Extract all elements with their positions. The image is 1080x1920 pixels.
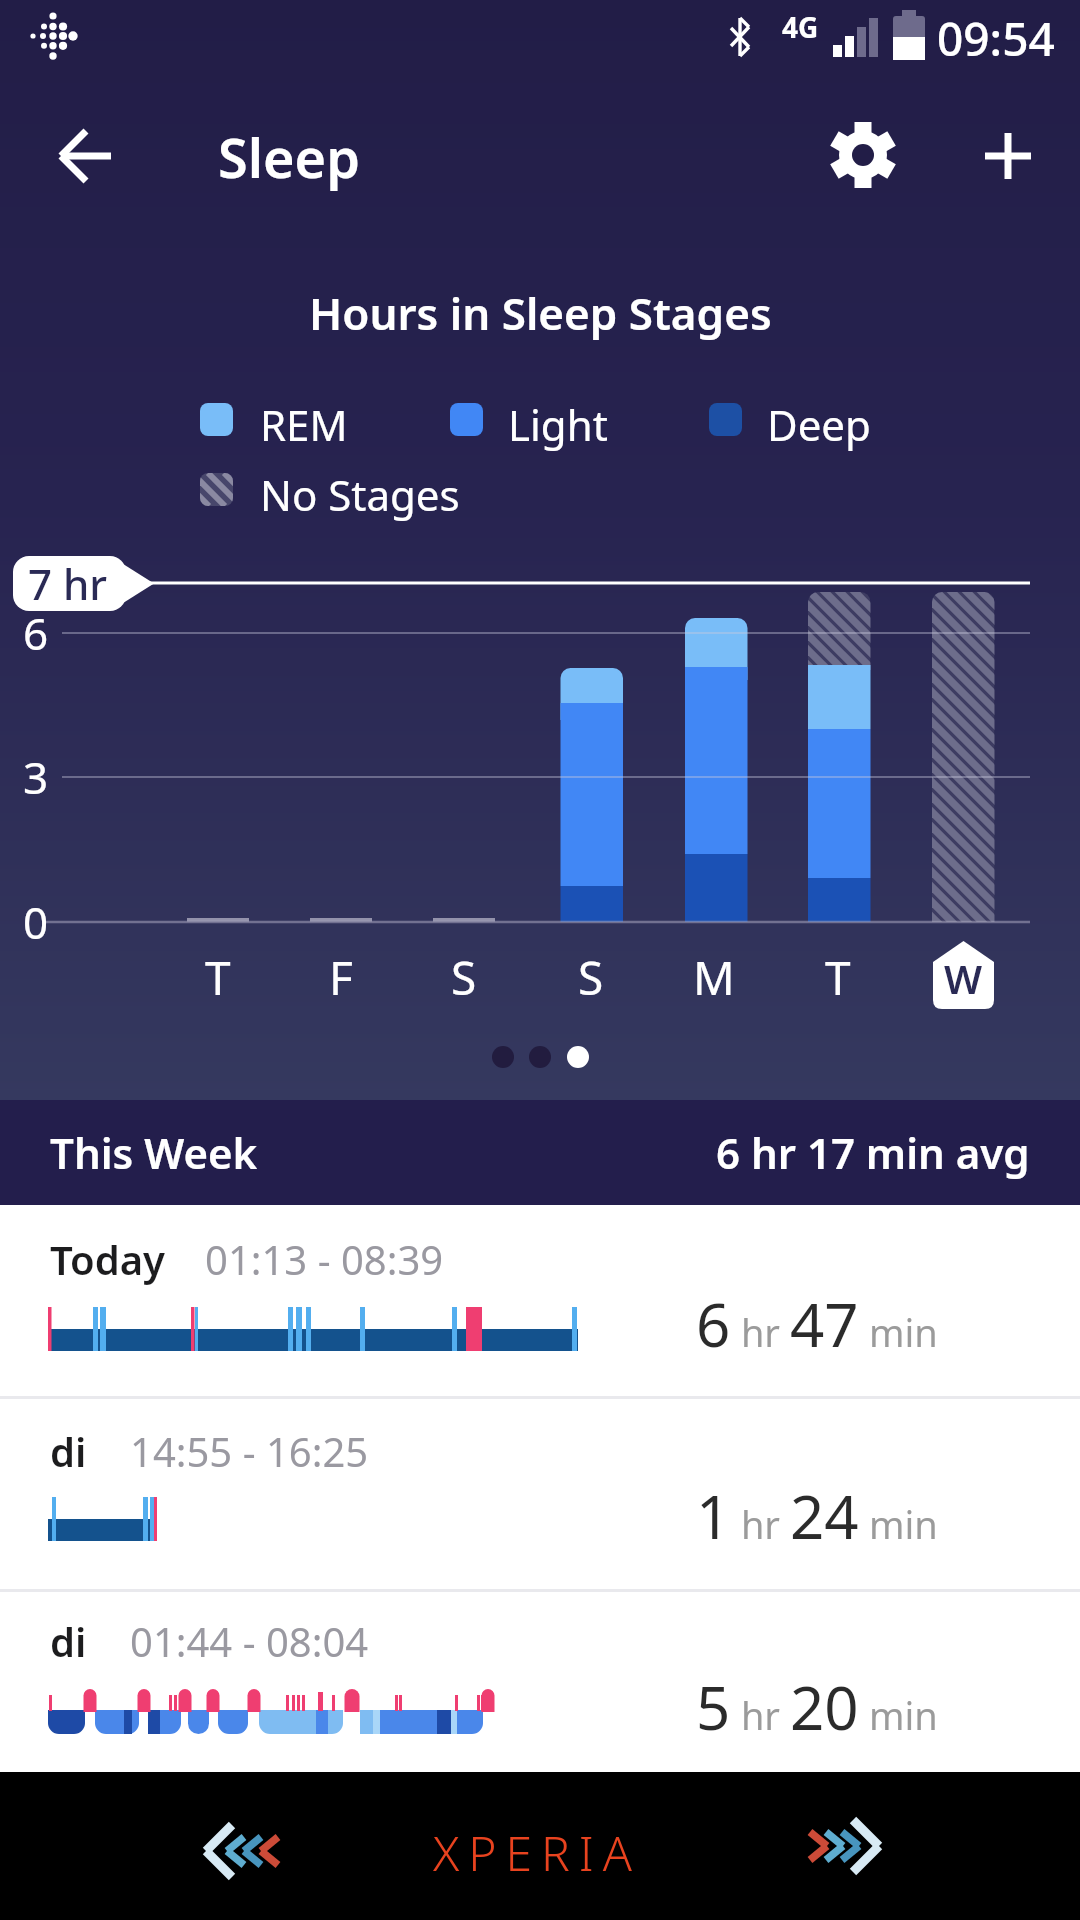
staticText: min [859, 1689, 938, 1741]
staticText: 6 [696, 1283, 731, 1365]
staticText: M [693, 946, 735, 1009]
button[interactable]: XPERIA [337, 1812, 737, 1892]
staticText: 01:13 - 08:39 [205, 1232, 444, 1286]
staticText: Deep [767, 396, 871, 453]
staticText: Today [50, 1232, 165, 1286]
button[interactable] [0, 1590, 1080, 1772]
staticText: T [825, 946, 851, 1009]
button[interactable] [190, 1808, 290, 1893]
staticText: 01:44 - 08:04 [130, 1614, 369, 1668]
staticText: T [205, 946, 231, 1009]
staticText: Hours in Sleep Stages [309, 283, 772, 343]
staticText: min [859, 1306, 938, 1358]
staticText: 09:54 [937, 7, 1055, 67]
staticText: di [50, 1424, 87, 1478]
staticText: 24 [790, 1475, 859, 1557]
staticText: 5 [696, 1666, 731, 1748]
staticText: hr [731, 1689, 790, 1741]
staticText: 7 hr [28, 555, 108, 612]
button[interactable] [795, 1803, 895, 1888]
staticText: 0 [23, 892, 49, 952]
staticText: di [50, 1614, 87, 1668]
staticText: No Stages [260, 466, 460, 523]
staticText: 1 [696, 1475, 731, 1557]
button[interactable] [0, 1397, 1080, 1590]
staticText: XPERIA [433, 1820, 641, 1885]
button[interactable] [818, 110, 908, 200]
staticText: Sleep [218, 120, 360, 194]
button[interactable]: This Week [0, 1100, 1080, 1205]
staticText: 6 hr 17 min avg [716, 1124, 1030, 1181]
staticText: hr [731, 1498, 790, 1550]
button[interactable] [40, 112, 130, 202]
staticText: 20 [790, 1666, 859, 1748]
staticText: 4G [782, 8, 819, 46]
button[interactable] [963, 111, 1053, 201]
staticText: hr [731, 1306, 790, 1358]
staticText: This Week [50, 1124, 258, 1181]
staticText: min [859, 1498, 938, 1550]
staticText: 6 [23, 603, 49, 663]
staticText: Light [508, 396, 608, 453]
staticText: S [451, 946, 477, 1009]
staticText: W [944, 951, 983, 1005]
staticText: S [578, 946, 604, 1009]
staticText: 3 [23, 747, 49, 807]
button[interactable] [0, 1205, 1080, 1397]
staticText: F [329, 946, 353, 1009]
staticText: 47 [790, 1283, 859, 1365]
staticText: REM [260, 396, 348, 453]
staticText: 14:55 - 16:25 [130, 1424, 369, 1478]
